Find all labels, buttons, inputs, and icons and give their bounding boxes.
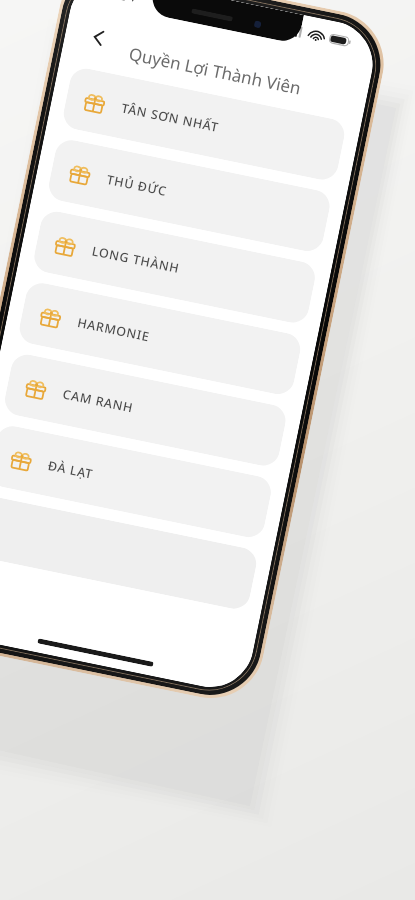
button[interactable]: Back (73, 12, 123, 62)
button[interactable]: CAM RANH (2, 352, 289, 469)
staticText: THỦ ĐỨC (105, 171, 168, 200)
button[interactable]: HARMONIE (17, 280, 303, 397)
button[interactable]: LONG THÀNH (31, 209, 318, 326)
staticText: CAM RANH (61, 385, 135, 416)
button[interactable]: THỦ ĐỨC (46, 137, 333, 254)
button[interactable] (0, 495, 259, 612)
staticText: Quyền Lợi Thành Viên (111, 39, 319, 103)
button[interactable]: ĐÀ LẠT (0, 423, 274, 540)
button[interactable]: TÂN SƠN NHẤT (61, 66, 347, 183)
staticText: LONG THÀNH (90, 242, 181, 277)
staticText: 5:52 (99, 0, 128, 5)
staticText: HARMONIE (76, 314, 152, 345)
staticText: TÂN SƠN NHẤT (120, 99, 220, 136)
staticText: ĐÀ LẠT (46, 457, 95, 483)
